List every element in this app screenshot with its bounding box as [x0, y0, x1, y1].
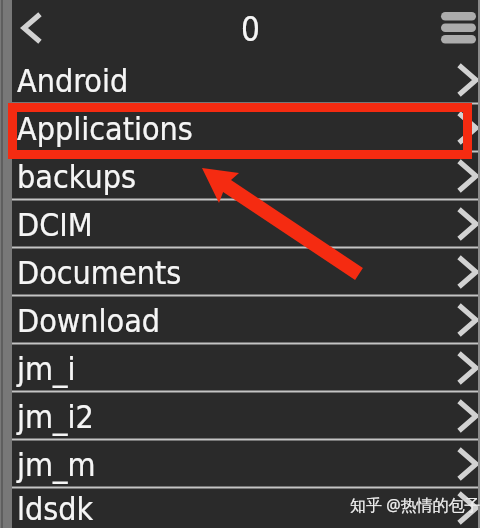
- staticText: jm_m: [17, 446, 96, 483]
- button[interactable]: backups: [12, 152, 478, 200]
- staticText: 知乎 @热情的包子: [350, 494, 480, 516]
- staticText: Documents: [17, 254, 182, 291]
- button[interactable]: jm_m: [12, 440, 478, 488]
- staticText: ldsdk: [17, 490, 94, 527]
- staticText: Download: [17, 302, 161, 339]
- button[interactable]: jm_i2: [12, 392, 478, 440]
- button[interactable]: Menu: [426, 0, 478, 56]
- button[interactable]: jm_i: [12, 344, 478, 392]
- staticText: backups: [17, 158, 136, 195]
- staticText: jm_i: [17, 350, 76, 387]
- button[interactable]: Documents: [12, 248, 478, 296]
- staticText: 0: [241, 10, 260, 48]
- staticText: DCIM: [17, 206, 93, 243]
- button[interactable]: Download: [12, 296, 478, 344]
- button[interactable]: ldsdk: [12, 488, 478, 528]
- staticText: Applications: [17, 110, 193, 147]
- button[interactable]: Back: [12, 0, 56, 56]
- staticText: Android: [17, 62, 129, 99]
- staticText: jm_i2: [17, 398, 94, 435]
- button[interactable]: Android: [12, 56, 478, 104]
- button[interactable]: Applications: [12, 104, 478, 152]
- button[interactable]: DCIM: [12, 200, 478, 248]
